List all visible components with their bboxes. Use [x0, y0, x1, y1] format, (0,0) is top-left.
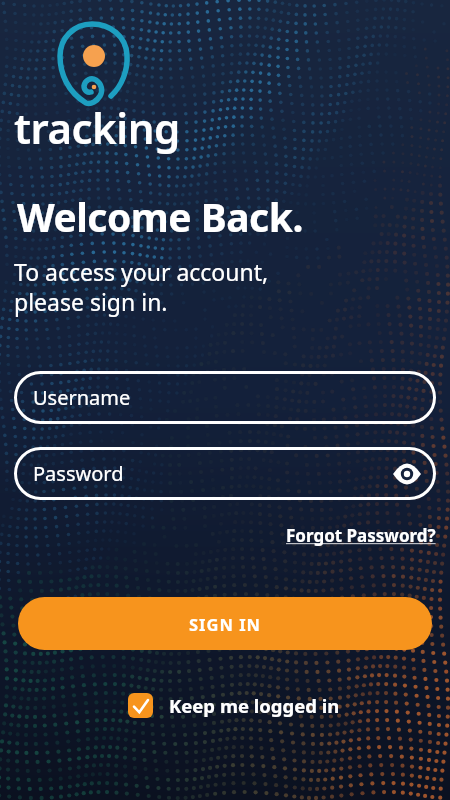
- button[interactable]: [128, 693, 153, 718]
- button[interactable]: Forgot Password?: [286, 524, 436, 547]
- button[interactable]: Username: [14, 371, 436, 424]
- button[interactable]: SIGN IN: [18, 597, 432, 650]
- staticText: Keep me logged in: [169, 693, 340, 718]
- staticText: Username: [33, 384, 131, 411]
- button[interactable]: Password: [14, 447, 436, 500]
- staticText: To access your account, please sign in.: [14, 256, 269, 318]
- staticText: SIGN IN: [189, 613, 261, 635]
- staticText: Password: [33, 460, 124, 487]
- staticText: Welcome Back.: [17, 190, 303, 243]
- staticText: tracking: [14, 99, 180, 156]
